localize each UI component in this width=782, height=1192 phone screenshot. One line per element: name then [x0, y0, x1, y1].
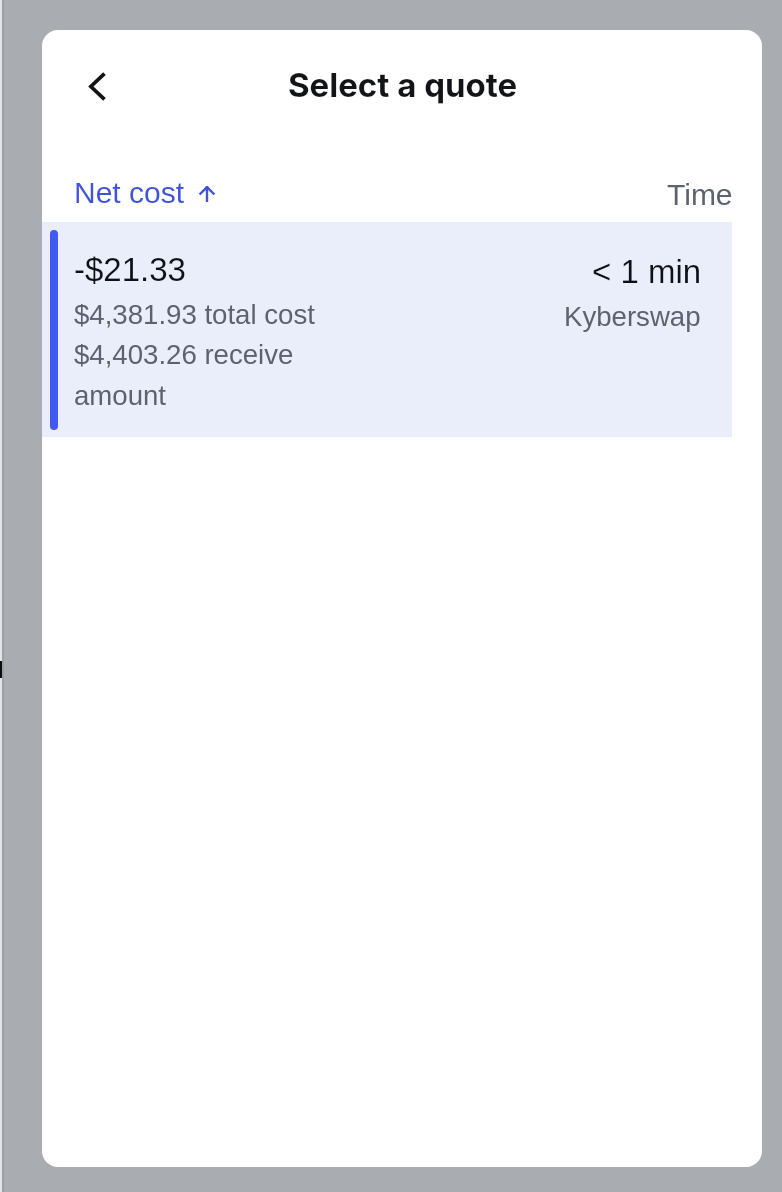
button[interactable]: Time	[655, 169, 745, 221]
button[interactable]: Net cost	[62, 166, 227, 218]
staticText: Kyberswap	[564, 301, 701, 332]
staticText: $4,403.26 receive amount	[74, 339, 334, 411]
staticText: Select a quote	[288, 65, 518, 105]
staticText: Time	[667, 178, 733, 212]
staticText: Net cost	[74, 176, 185, 210]
button[interactable]: -$21.33	[42, 222, 732, 437]
staticText: -$21.33	[74, 251, 186, 288]
staticText: < 1 min	[592, 253, 702, 290]
staticText: $4,381.93 total cost	[74, 299, 315, 330]
button[interactable]: Back	[67, 57, 126, 116]
